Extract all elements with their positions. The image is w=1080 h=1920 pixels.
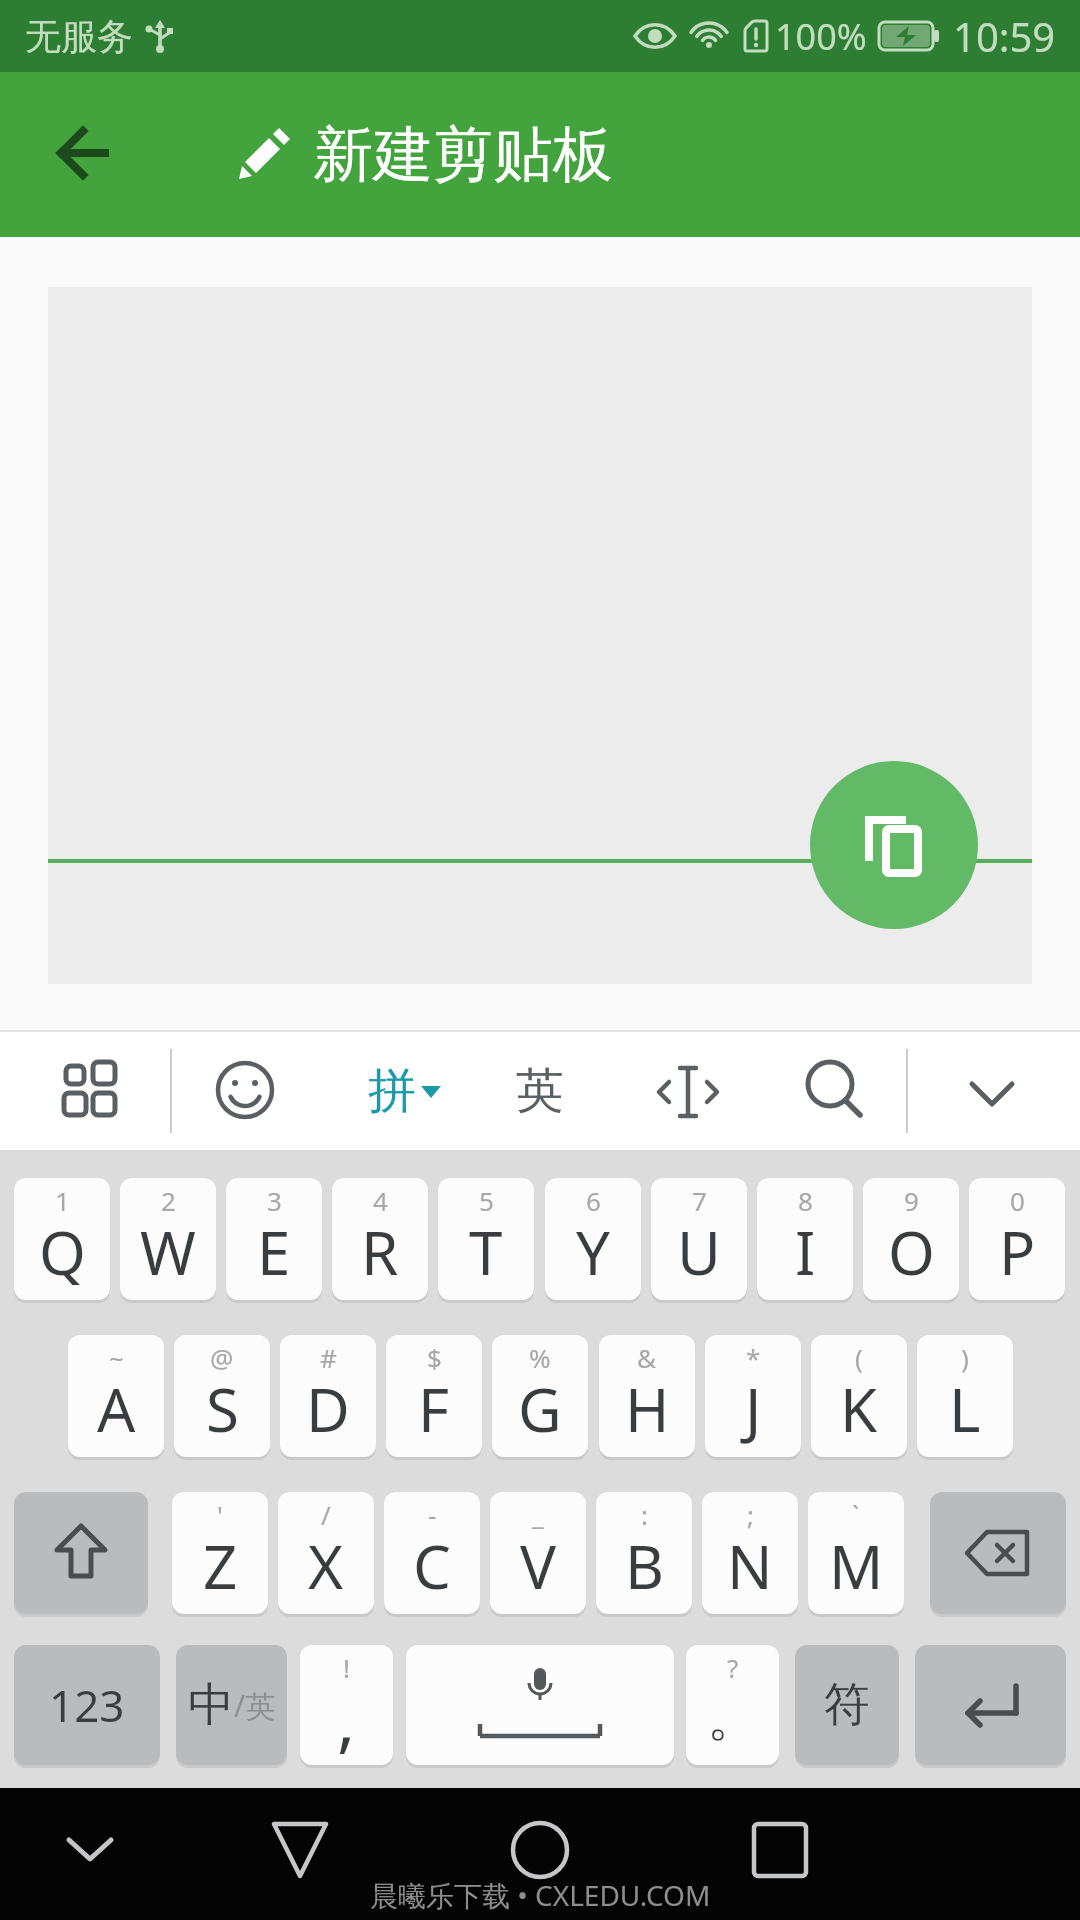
staticText: 英	[516, 1061, 564, 1121]
button[interactable]: 4	[332, 1178, 428, 1300]
staticText: &	[637, 1340, 657, 1375]
button[interactable]: 0	[969, 1178, 1065, 1300]
button[interactable]	[798, 1054, 870, 1126]
button[interactable]: ;	[702, 1492, 798, 1614]
staticText: 符	[824, 1676, 870, 1734]
button[interactable]: 6	[545, 1178, 641, 1300]
button[interactable]: 3	[226, 1178, 322, 1300]
staticText: %	[529, 1340, 551, 1375]
staticText: :	[641, 1497, 648, 1532]
button[interactable]: _	[490, 1492, 586, 1614]
staticText: 无服务	[25, 14, 133, 59]
button[interactable]: 9	[863, 1178, 959, 1300]
staticText: ~	[109, 1340, 124, 1375]
button[interactable]	[14, 1492, 148, 1614]
button[interactable]: @	[174, 1335, 270, 1457]
staticText: 9	[904, 1183, 919, 1218]
staticText: ?	[727, 1650, 739, 1685]
button[interactable]: (	[811, 1335, 907, 1457]
button[interactable]: )	[917, 1335, 1013, 1457]
staticText: Z	[203, 1525, 238, 1607]
button[interactable]	[650, 1054, 726, 1130]
button[interactable]: -	[384, 1492, 480, 1614]
staticText: _	[532, 1497, 544, 1532]
staticText: I	[795, 1211, 816, 1293]
button[interactable]: 2	[120, 1178, 216, 1300]
staticText: 6	[586, 1183, 601, 1218]
button[interactable]: 中	[176, 1645, 287, 1765]
staticText: @	[210, 1340, 234, 1375]
button[interactable]	[498, 1808, 582, 1892]
button[interactable]	[930, 1492, 1066, 1614]
staticText: M	[829, 1525, 884, 1607]
staticText: !	[343, 1650, 350, 1685]
button[interactable]: /	[278, 1492, 374, 1614]
staticText: 新建剪贴板	[313, 117, 613, 193]
staticText: #	[320, 1340, 337, 1375]
staticText: ,	[337, 1672, 356, 1765]
staticText: 0	[1010, 1183, 1025, 1218]
button[interactable]	[258, 1808, 342, 1892]
button[interactable]	[406, 1645, 674, 1765]
button[interactable]	[48, 1808, 132, 1892]
button[interactable]: ?	[686, 1645, 779, 1765]
button[interactable]	[810, 761, 978, 929]
staticText: Q	[39, 1211, 86, 1293]
button[interactable]: #	[280, 1335, 376, 1457]
button[interactable]: :	[596, 1492, 692, 1614]
button[interactable]: 123	[14, 1645, 160, 1765]
button[interactable]: &	[599, 1335, 695, 1457]
button[interactable]: !	[300, 1645, 393, 1765]
button[interactable]	[56, 1054, 124, 1122]
staticText: 2	[161, 1183, 176, 1218]
staticText: /	[321, 1497, 331, 1532]
button[interactable]	[40, 108, 130, 198]
staticText: 10:59	[953, 9, 1056, 63]
staticText: E	[257, 1211, 291, 1293]
button[interactable]: $	[386, 1335, 482, 1457]
button[interactable]: 拼	[368, 1050, 458, 1132]
staticText: L	[949, 1368, 981, 1450]
button[interactable]: *	[705, 1335, 801, 1457]
button[interactable]: 5	[438, 1178, 534, 1300]
staticText: X	[308, 1525, 344, 1607]
button[interactable]: 7	[651, 1178, 747, 1300]
staticText: S	[206, 1368, 239, 1450]
staticText: B	[625, 1525, 664, 1607]
staticText: 8	[798, 1183, 813, 1218]
staticText: F	[418, 1368, 450, 1450]
staticText: ;	[747, 1497, 754, 1532]
staticText: 。	[707, 1685, 759, 1751]
button[interactable]	[952, 1054, 1032, 1134]
staticText: Y	[576, 1211, 610, 1293]
staticText: T	[469, 1211, 503, 1293]
staticText: W	[140, 1211, 196, 1293]
staticText: 7	[692, 1183, 707, 1218]
staticText: /英	[234, 1685, 276, 1726]
button[interactable]: 1	[14, 1178, 110, 1300]
button[interactable]: %	[492, 1335, 588, 1457]
staticText: H	[625, 1368, 670, 1450]
button[interactable]	[738, 1808, 822, 1892]
button[interactable]: 英	[505, 1050, 575, 1132]
button[interactable]	[211, 1056, 279, 1124]
staticText: U	[677, 1211, 721, 1293]
button[interactable]: 8	[757, 1178, 853, 1300]
button[interactable]: `	[808, 1492, 904, 1614]
staticText: 中	[188, 1676, 234, 1734]
staticText: K	[840, 1368, 878, 1450]
staticText: (	[855, 1340, 863, 1375]
staticText: `	[852, 1497, 860, 1532]
staticText: 1	[55, 1183, 70, 1218]
button[interactable]: ~	[68, 1335, 164, 1457]
staticText: *	[746, 1340, 761, 1375]
button[interactable]: 符	[795, 1645, 899, 1765]
button[interactable]	[915, 1645, 1066, 1765]
staticText: R	[361, 1211, 399, 1293]
button[interactable]: '	[172, 1492, 268, 1614]
staticText: D	[306, 1368, 350, 1450]
staticText: 5	[479, 1183, 494, 1218]
staticText: 123	[49, 1675, 125, 1735]
staticText: V	[520, 1525, 556, 1607]
staticText: 3	[267, 1183, 282, 1218]
